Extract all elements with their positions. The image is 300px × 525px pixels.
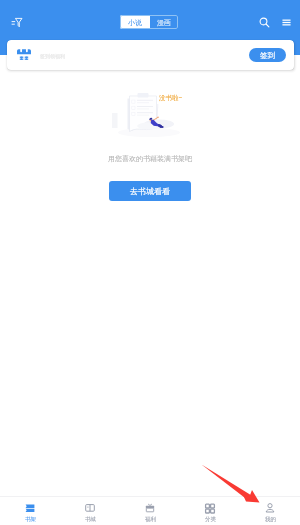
button[interactable]: 漫画 (150, 15, 178, 29)
button[interactable]: 签到领福利 (7, 40, 294, 70)
staticText: 用您喜欢的书籍装满书架吧 (0, 154, 300, 163)
button[interactable]: Filter (3, 8, 31, 36)
staticText: 书架 (25, 516, 36, 523)
button[interactable]: 书架 (0, 497, 60, 525)
button[interactable]: Menu (272, 8, 300, 36)
button[interactable]: 福利 (120, 497, 180, 525)
staticText: 福利 (145, 516, 156, 523)
button[interactable]: 分类 (180, 497, 240, 525)
staticText: 分类 (205, 516, 216, 523)
button[interactable]: 书城 (60, 497, 120, 525)
staticText: 去书城看看 (130, 186, 170, 196)
button[interactable]: 签到 (249, 48, 286, 62)
staticText: 我的 (265, 516, 276, 523)
button[interactable]: Search (250, 8, 278, 36)
staticText: 小说 (128, 18, 142, 27)
staticText: 签到 (260, 51, 275, 60)
button[interactable]: 去书城看看 (109, 181, 191, 201)
staticText: 没书啦~ (159, 93, 183, 102)
button[interactable]: 小说 (120, 15, 150, 29)
button[interactable]: 我的 (240, 497, 300, 525)
staticText: 书城 (85, 516, 96, 523)
staticText: 漫画 (157, 18, 171, 27)
staticText: 签到领福利 (40, 53, 65, 59)
